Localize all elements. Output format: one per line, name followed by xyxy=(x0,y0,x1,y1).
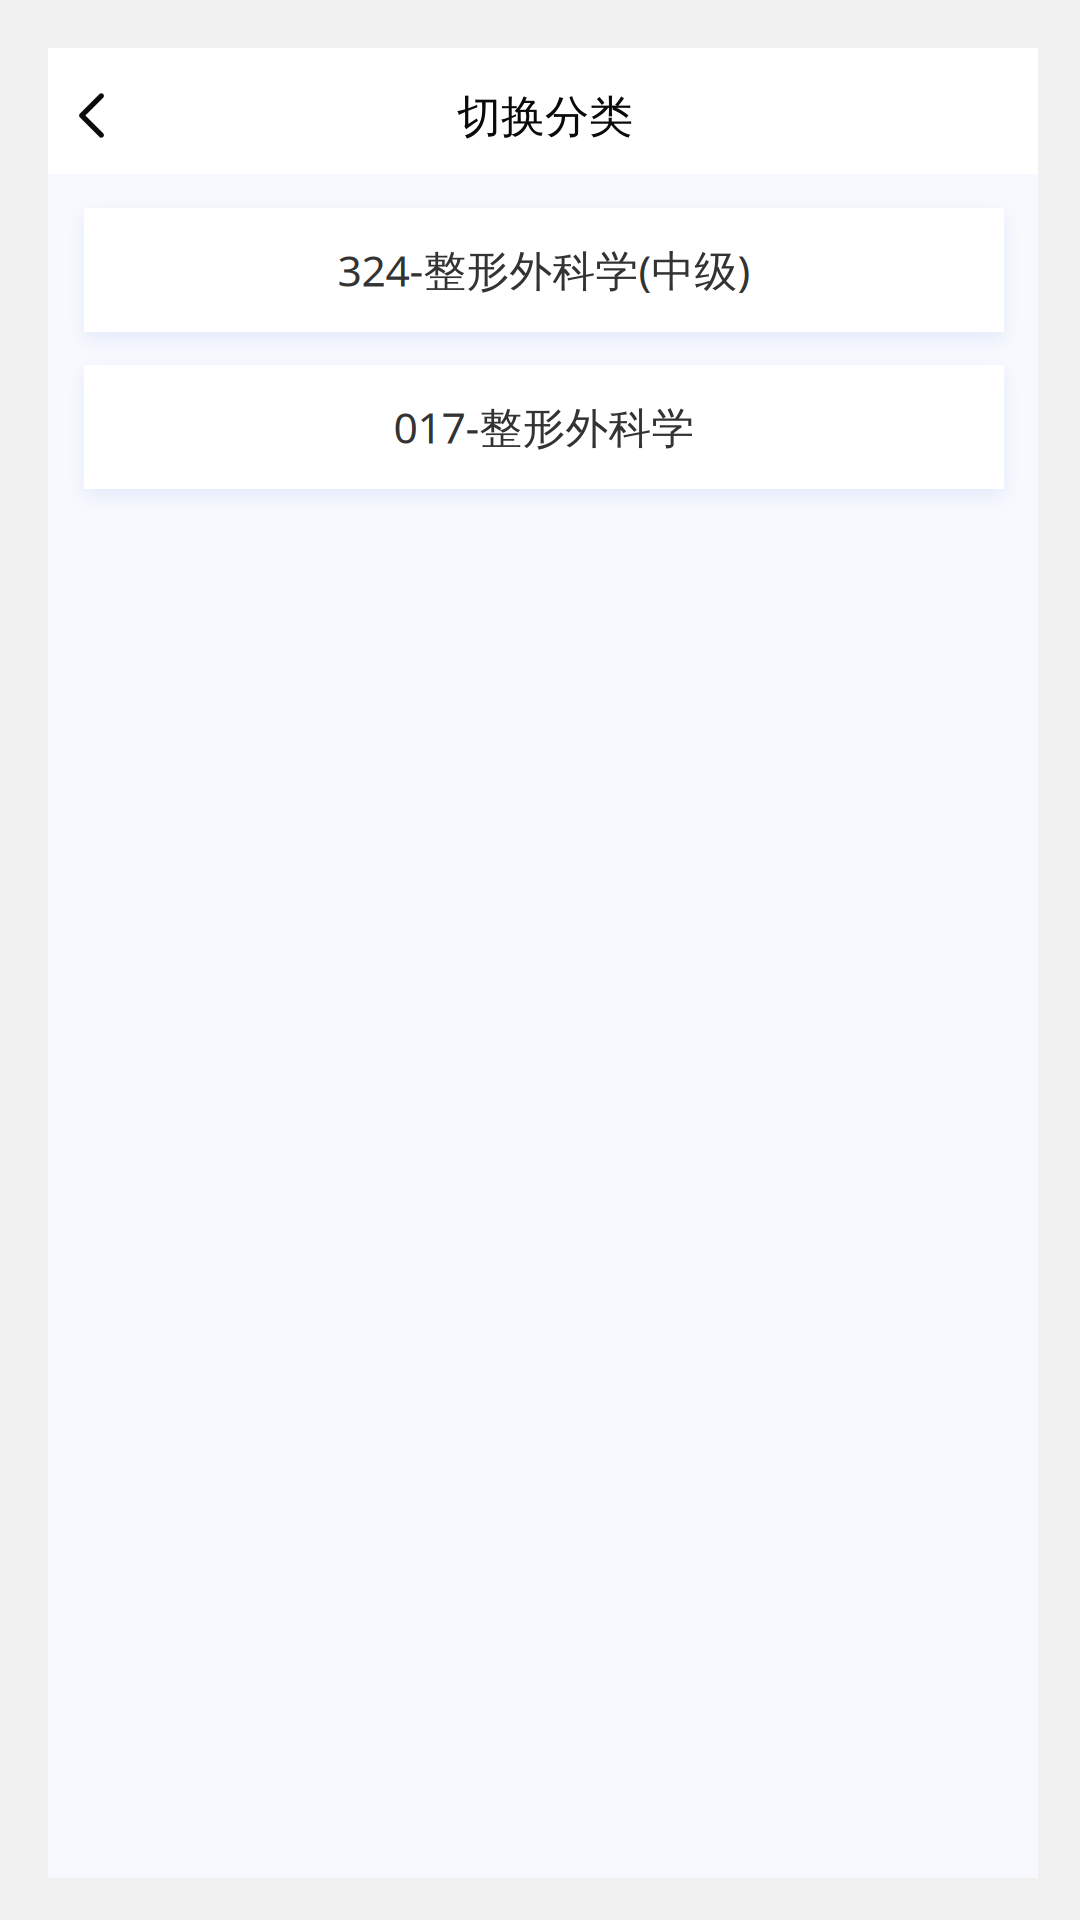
staticText: 017-整形外科学 xyxy=(393,399,694,455)
button[interactable]: 324-整形外科学(中级) xyxy=(84,208,1004,332)
button[interactable]: Back xyxy=(48,48,132,174)
button[interactable]: 017-整形外科学 xyxy=(84,365,1004,489)
staticText: 切换分类 xyxy=(457,90,633,144)
staticText: 324-整形外科学(中级) xyxy=(337,242,750,298)
